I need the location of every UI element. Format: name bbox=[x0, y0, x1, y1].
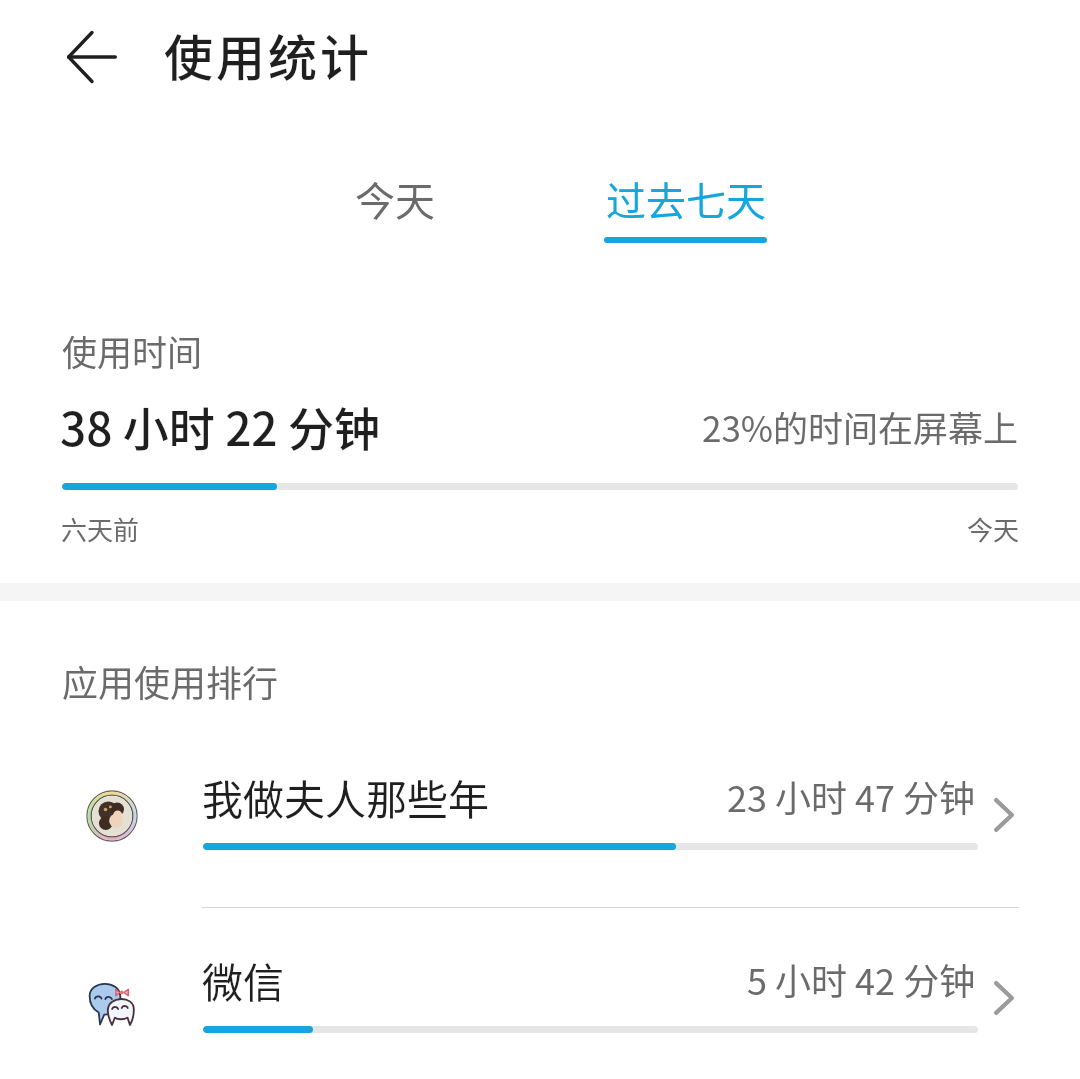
staticText: 使用统计 bbox=[164, 19, 373, 90]
staticText: 我做夫人那些年 bbox=[202, 767, 489, 826]
button[interactable]: Back bbox=[62, 27, 122, 87]
staticText: 今天 bbox=[967, 510, 1020, 548]
button[interactable]: 过去七天 bbox=[540, 160, 830, 250]
staticText: 5 小时 42 分钟 bbox=[747, 953, 976, 1005]
button[interactable]: 我做夫人那些年 bbox=[0, 748, 1080, 931]
other: Open app details bbox=[981, 975, 1027, 1021]
staticText: 23%的时间在屏幕上 bbox=[702, 401, 1019, 452]
staticText: 今天 bbox=[355, 170, 435, 228]
staticText: 微信 bbox=[202, 950, 284, 1009]
staticText: 38 小时 22 分钟 bbox=[60, 393, 380, 460]
button[interactable]: 今天 bbox=[250, 160, 540, 250]
staticText: 过去七天 bbox=[606, 170, 766, 228]
staticText: 23 小时 47 分钟 bbox=[727, 770, 976, 822]
staticText: 六天前 bbox=[61, 510, 140, 548]
staticText: 使用时间 bbox=[62, 325, 203, 376]
other: Open app details bbox=[981, 792, 1027, 838]
staticText: 应用使用排行 bbox=[62, 655, 279, 707]
button[interactable]: 微信 bbox=[0, 931, 1080, 1079]
